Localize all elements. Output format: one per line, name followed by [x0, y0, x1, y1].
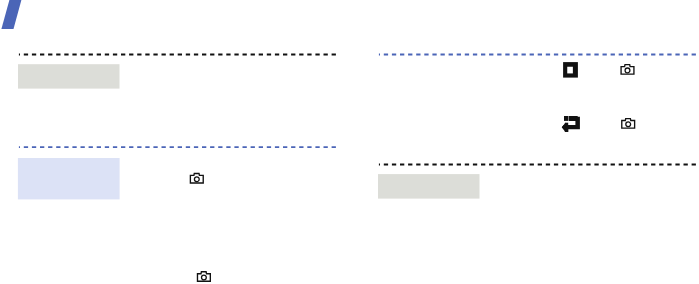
button[interactable]: Take photo [189, 263, 218, 284]
button[interactable]: Take photo [614, 110, 643, 139]
button[interactable]: Stop [555, 54, 585, 84]
button[interactable]: Enter [554, 108, 586, 138]
button[interactable]: Take photo [613, 56, 642, 85]
button[interactable]: Take photo [182, 165, 211, 194]
